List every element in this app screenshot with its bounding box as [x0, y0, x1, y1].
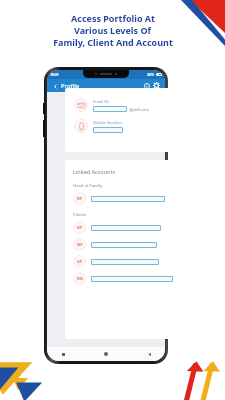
staticText: Family, Client And Account [53, 36, 173, 48]
button[interactable]: RP [73, 221, 173, 234]
staticText: Mobile Number [93, 120, 123, 125]
staticText: Linked Accounts [73, 168, 116, 175]
button[interactable]: Settings [152, 81, 161, 90]
staticText: Profile [61, 82, 80, 90]
button[interactable]: RN [73, 272, 173, 285]
staticText: Clients [73, 212, 87, 218]
button[interactable]: Information [142, 81, 151, 90]
button[interactable]: Recents [59, 350, 67, 358]
button[interactable]: NP [73, 238, 173, 251]
staticText: RP [77, 196, 83, 201]
button[interactable]: Home [102, 350, 110, 358]
button[interactable]: Email ID [74, 98, 178, 112]
button[interactable]: RP [73, 192, 173, 205]
button[interactable]: Mobile Number [74, 119, 178, 133]
button[interactable]: Back [145, 350, 153, 358]
staticText: NP [77, 242, 83, 247]
staticText: RP [77, 225, 83, 230]
staticText: Access Portfolio At [71, 12, 155, 24]
staticText: AP [77, 259, 83, 264]
staticText: 26% [147, 72, 154, 77]
staticText: Various Levels Of [74, 24, 151, 36]
staticText: 18:31 [50, 72, 59, 77]
staticText: Email ID [93, 99, 109, 104]
button[interactable]: AP [73, 255, 173, 268]
button[interactable]: Back [51, 82, 59, 90]
staticText: RN [77, 276, 83, 281]
staticText: @jmfl.com [129, 107, 149, 112]
staticText: Head of Family [73, 183, 103, 189]
